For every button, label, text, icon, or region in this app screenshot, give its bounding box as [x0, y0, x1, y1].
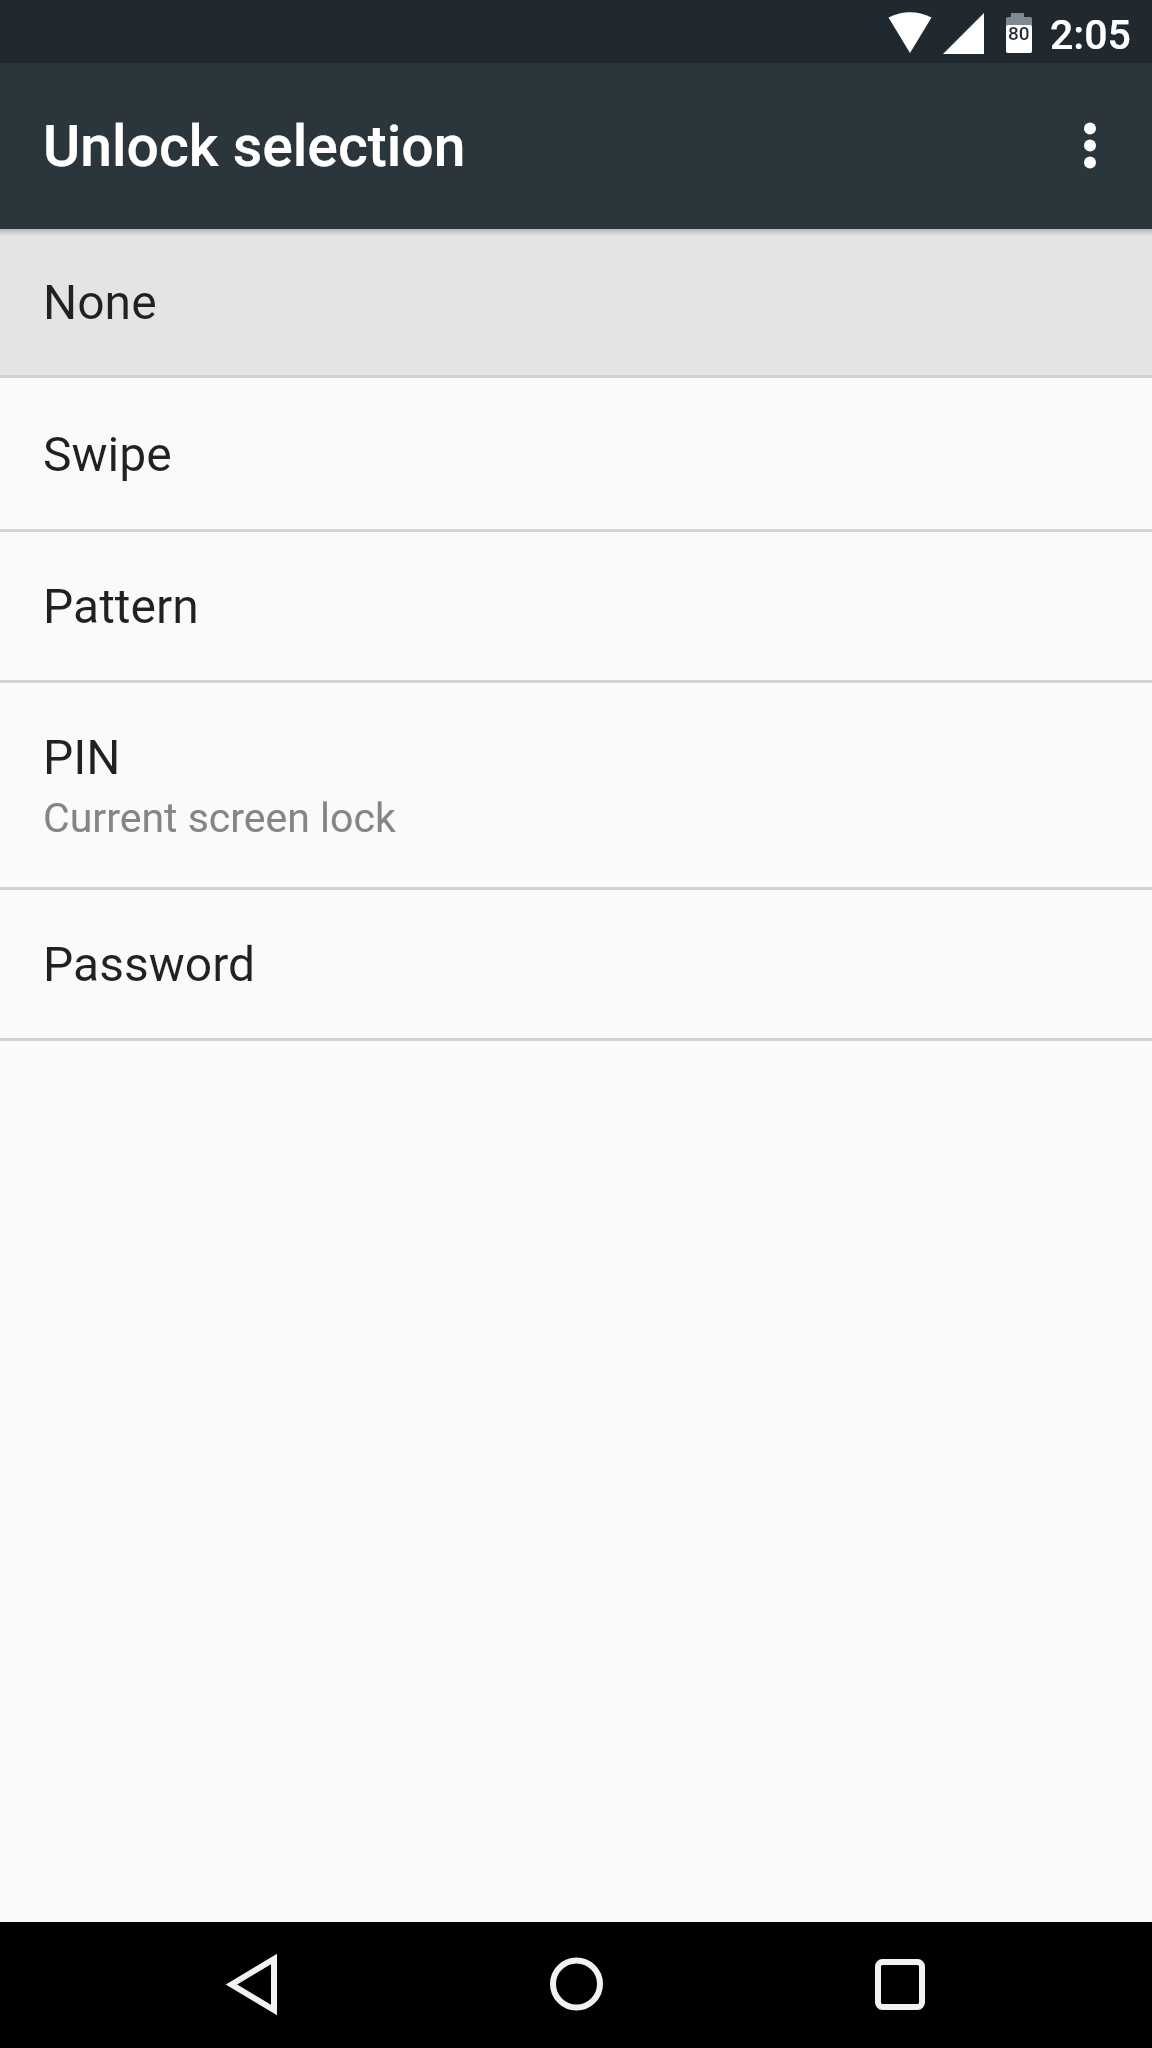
button[interactable]: PIN	[0, 683, 1152, 887]
staticText: Unlock selection	[43, 113, 466, 180]
button[interactable]	[1066, 104, 1114, 188]
button[interactable]: None	[0, 229, 1152, 375]
staticText: 80	[1008, 22, 1030, 44]
staticText: PIN	[43, 729, 121, 785]
button[interactable]: Swipe	[0, 378, 1152, 529]
staticText: 2:05	[1050, 11, 1131, 59]
staticText: Current screen lock	[43, 794, 396, 842]
staticText: None	[43, 274, 157, 330]
staticText: Password	[43, 936, 256, 992]
button[interactable]	[513, 1922, 639, 2048]
button[interactable]: Password	[0, 890, 1152, 1038]
staticText: Swipe	[43, 426, 172, 482]
staticText: Pattern	[43, 578, 199, 634]
button[interactable]: Pattern	[0, 532, 1152, 680]
button[interactable]	[837, 1922, 963, 2048]
button[interactable]	[189, 1922, 315, 2048]
